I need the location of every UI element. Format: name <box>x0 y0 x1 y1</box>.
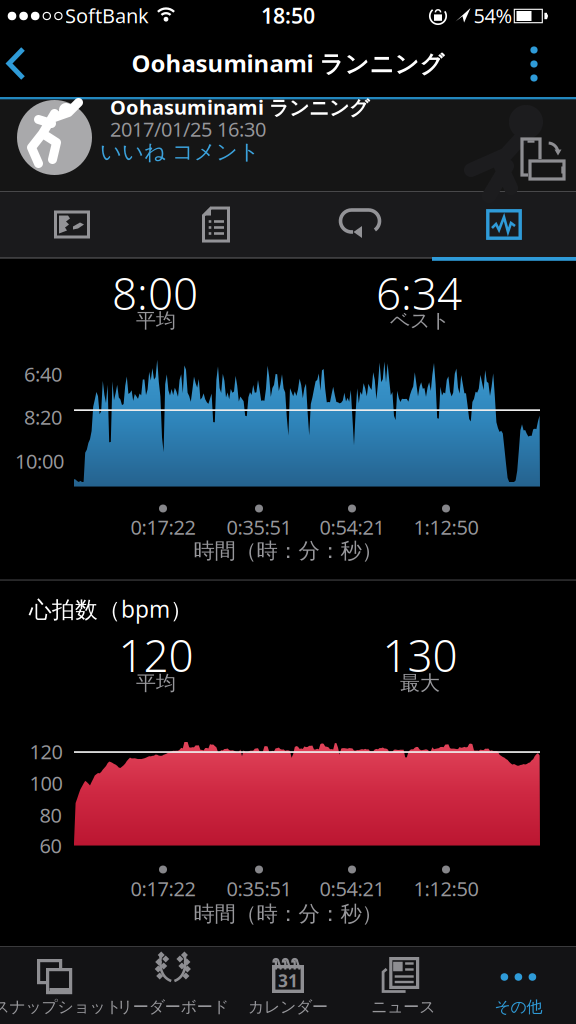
staticText: 80 <box>39 802 61 828</box>
staticText: 心拍数（bpm） <box>29 594 193 624</box>
button[interactable]: いいね <box>100 139 166 165</box>
staticText: 0:35:51 <box>226 514 291 540</box>
staticText: 6:40 <box>24 361 62 387</box>
staticText: リーダーボード <box>117 997 229 1017</box>
staticText: 60 <box>39 832 61 859</box>
staticText: 8:20 <box>24 404 62 430</box>
staticText: コメント <box>172 139 260 165</box>
button[interactable]: Snapshot view <box>0 192 144 256</box>
button[interactable]: Laps <box>288 192 432 256</box>
staticText: その他 <box>494 997 542 1017</box>
staticText: 31 <box>278 969 298 992</box>
staticText: 時間（時：分：秒） <box>193 901 382 927</box>
button[interactable]: その他 <box>461 947 576 1024</box>
staticText: 120 <box>29 738 62 765</box>
staticText: 平均 <box>136 671 176 695</box>
staticText: 時間（時：分：秒） <box>193 538 382 564</box>
staticText: スナップショット <box>0 997 122 1017</box>
staticText: 0:17:22 <box>130 514 195 540</box>
staticText: ニュース <box>371 997 435 1017</box>
button[interactable]: スナップショット <box>0 947 115 1024</box>
staticText: 10:00 <box>15 448 64 474</box>
button[interactable]: Charts <box>432 192 576 256</box>
staticText: 100 <box>29 770 62 796</box>
staticText: いいね <box>100 139 166 165</box>
button[interactable]: Back <box>5 46 31 82</box>
button[interactable]: Details <box>144 192 288 256</box>
staticText: 最大 <box>400 671 440 695</box>
button[interactable]: ニュース <box>346 947 461 1024</box>
button[interactable]: リーダーボード <box>115 947 230 1024</box>
staticText: カレンダー <box>248 997 328 1017</box>
staticText: Oohasuminami ランニング <box>131 47 444 79</box>
button[interactable]: コメント <box>172 139 260 165</box>
staticText: 18:50 <box>261 1 315 30</box>
staticText: 平均 <box>136 308 176 333</box>
button[interactable]: More options <box>519 43 549 85</box>
staticText: 0:54:21 <box>319 514 384 540</box>
staticText: 0:17:22 <box>130 875 195 902</box>
staticText: 0:35:51 <box>226 875 291 902</box>
staticText: 0:54:21 <box>319 875 384 902</box>
staticText: 8:00 <box>112 264 198 322</box>
staticText: 54% <box>473 2 512 29</box>
staticText: 1:12:50 <box>413 875 478 902</box>
staticText: 6:34 <box>376 264 462 322</box>
button[interactable]: 31 <box>230 947 346 1024</box>
staticText: 120 <box>118 626 193 684</box>
staticText: ベスト <box>390 308 450 333</box>
button[interactable]: Rotate to landscape chart view <box>518 135 566 181</box>
staticText: 2017/01/25 16:30 <box>110 116 266 142</box>
staticText: 130 <box>382 626 457 684</box>
staticText: Oohasuminami ランニング <box>110 94 369 120</box>
staticText: 1:12:50 <box>413 514 478 540</box>
staticText: SoftBank <box>65 2 149 29</box>
